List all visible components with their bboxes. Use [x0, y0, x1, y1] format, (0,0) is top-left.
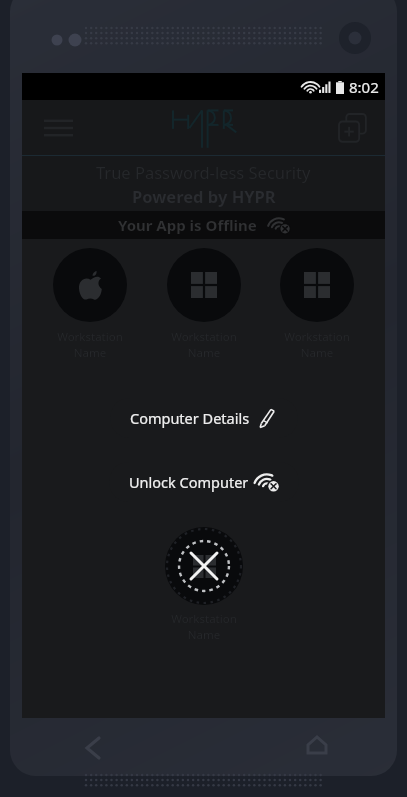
staticText: Your App is Offline — [118, 215, 257, 235]
button[interactable]: Unlock Computer — [109, 462, 299, 502]
staticText: Computer Details — [130, 408, 250, 428]
staticText: Workstation Name — [171, 611, 237, 642]
button[interactable]: Workstation Name — [265, 248, 369, 360]
staticText: Unlock Computer — [129, 472, 249, 492]
staticText: True Password-less Security — [96, 161, 311, 183]
button[interactable]: Your App is Offline — [22, 211, 385, 239]
staticText: Workstation Name — [284, 329, 350, 360]
staticText: Workstation Name — [171, 329, 237, 360]
staticText: Powered by HYPR — [132, 185, 276, 207]
button[interactable]: Workstation Name — [38, 248, 142, 360]
staticText: 8:02 — [349, 77, 379, 97]
staticText: Workstation Name — [57, 329, 123, 360]
button[interactable]: Computer Details — [110, 398, 298, 438]
button[interactable]: Workstation Name — [152, 248, 256, 360]
button[interactable]: Workstation Name — [165, 527, 243, 642]
button[interactable]: Add workstation — [331, 106, 375, 150]
button[interactable]: Menu — [36, 106, 80, 150]
